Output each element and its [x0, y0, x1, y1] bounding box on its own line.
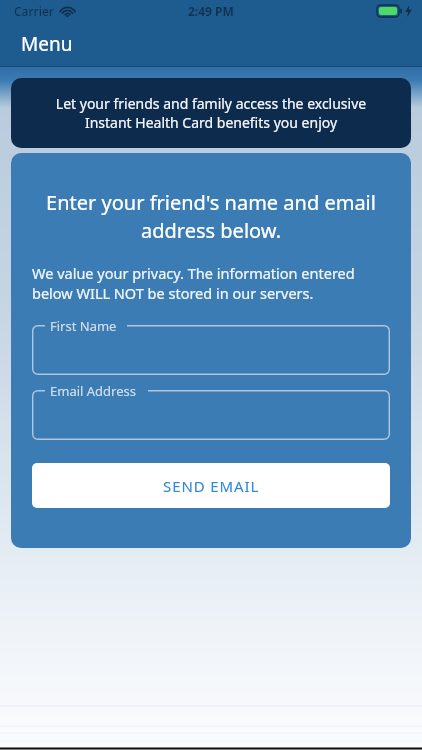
staticText: Let your friends and family access the e… [31, 94, 391, 132]
other: Wi-Fi signal [60, 6, 75, 17]
staticText: SEND EMAIL [163, 476, 260, 496]
staticText: Enter your friend's name and email addre… [41, 189, 381, 244]
button[interactable]: First Name [32, 325, 390, 375]
button[interactable]: SEND EMAIL [32, 463, 390, 508]
staticText: First Name [50, 317, 117, 335]
staticText: We value your privacy. The information e… [32, 263, 393, 303]
button[interactable]: Email Address [32, 390, 390, 440]
staticText: Email Address [50, 382, 136, 400]
staticText: Menu [21, 31, 73, 57]
other: Charging [405, 5, 412, 17]
staticText: Carrier [14, 3, 54, 19]
other: Battery full [377, 5, 402, 17]
button[interactable]: Menu [21, 31, 73, 57]
button[interactable]: Let your friends and family access the e… [11, 78, 411, 148]
staticText: 2:49 PM [188, 3, 234, 19]
